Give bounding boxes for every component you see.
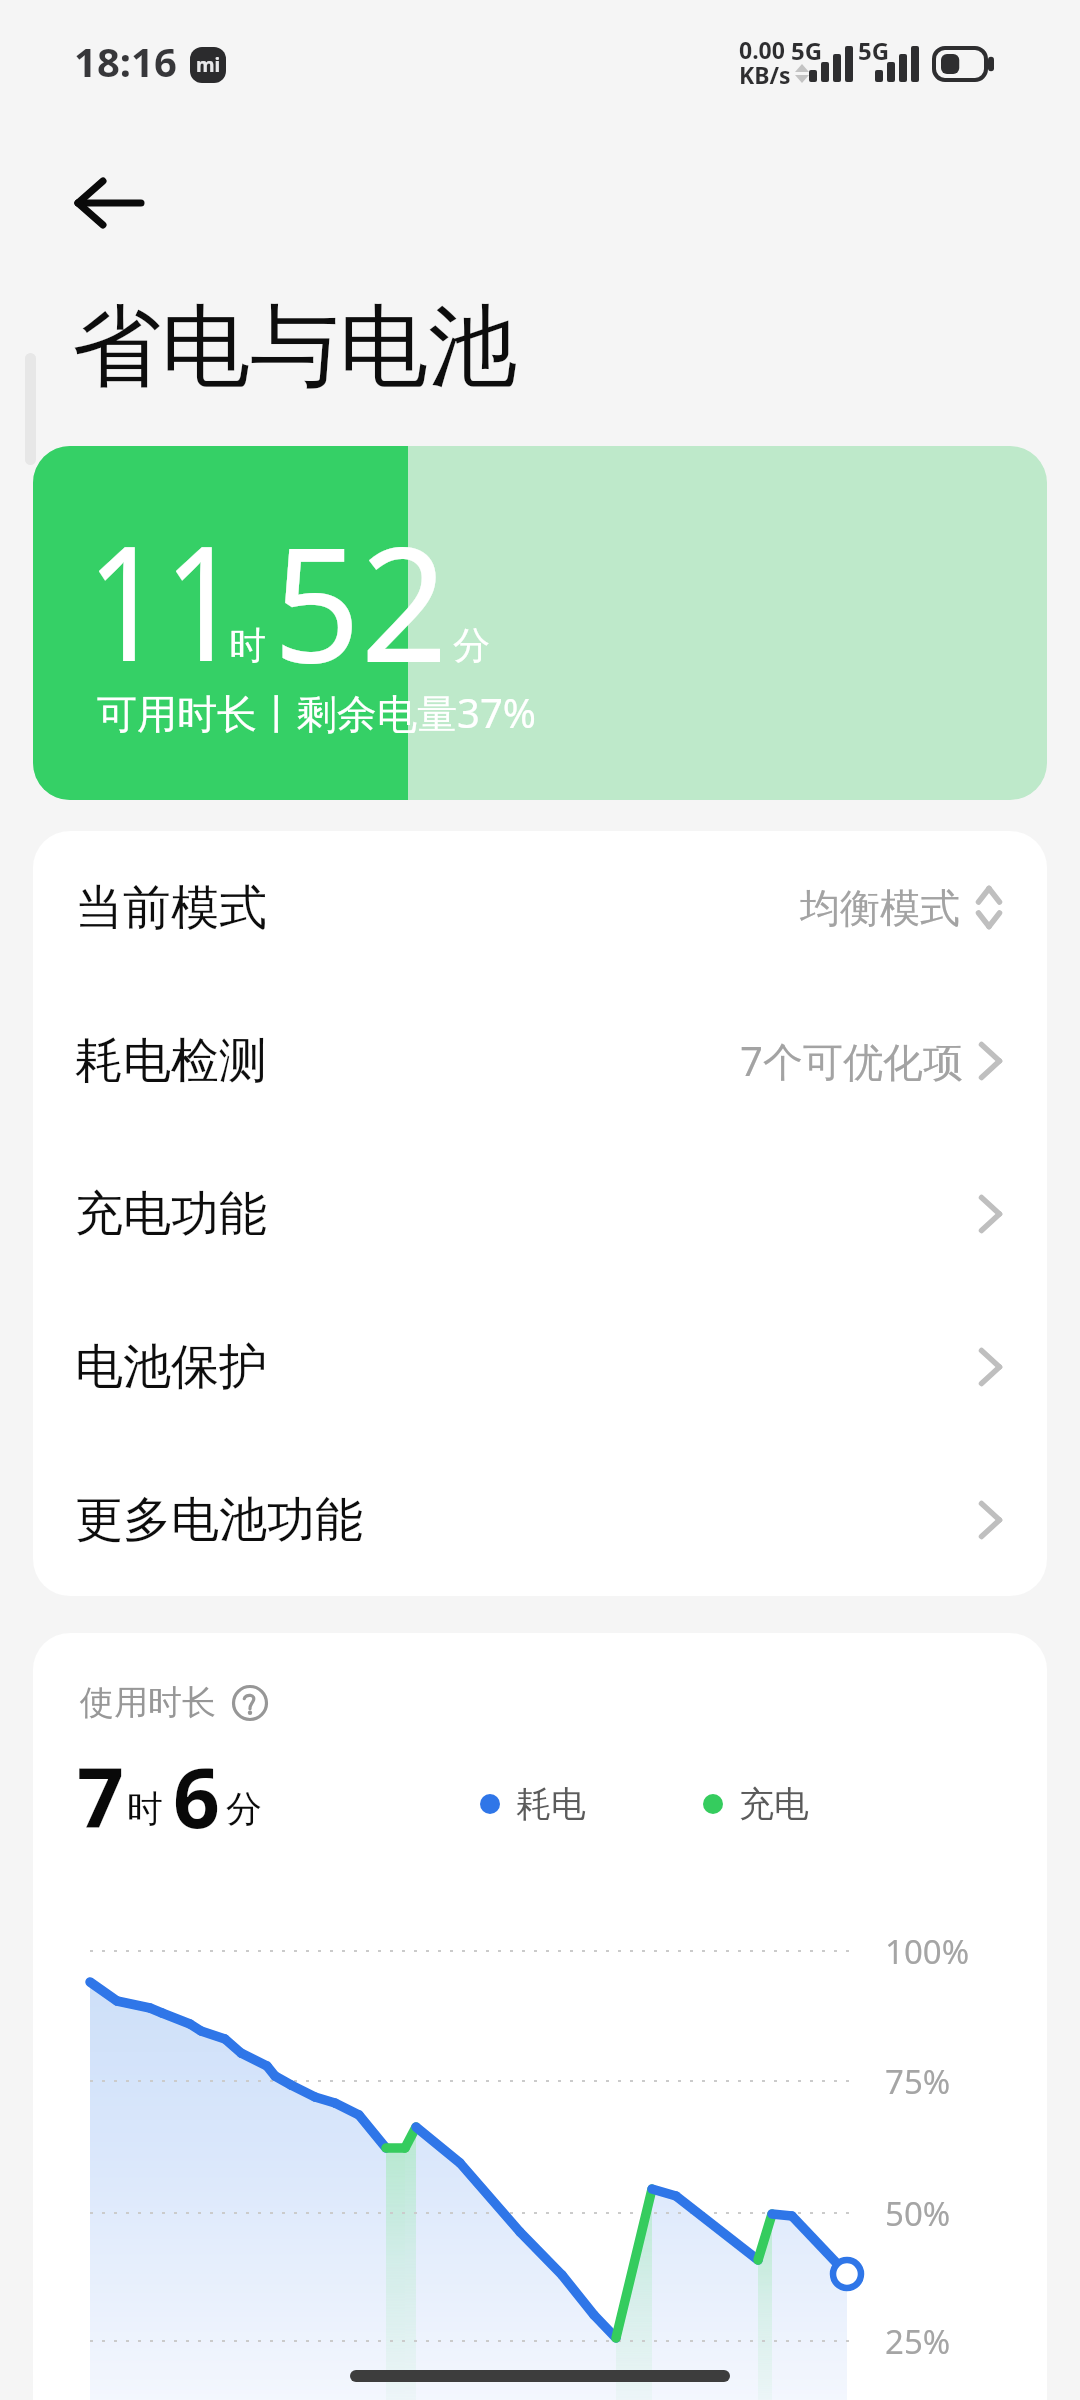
staticText: 充电 [739,1782,809,1826]
button[interactable]: 更多电池功能 [33,1443,1047,1596]
staticText: 7个可优化项 [740,1033,963,1088]
staticText: 11 [87,490,242,708]
button[interactable]: 充电功能 [33,1137,1047,1290]
staticText: 7 [77,1740,124,1852]
staticText: 电池保护 [75,1337,267,1397]
staticText: 5G [791,34,823,67]
other: Help [232,1685,268,1721]
staticText: 耗电检测 [75,1031,267,1091]
staticText: mi [196,52,221,78]
staticText: 0.00 [739,34,785,65]
staticText: 省电与电池 [72,291,517,403]
button[interactable]: 11 [33,446,1047,800]
staticText: 52 [273,491,449,709]
button[interactable]: 使用时长 [80,1681,268,1724]
staticText: 75% [885,2059,951,2104]
button[interactable]: Back [48,160,138,250]
staticText: 50% [885,2191,951,2236]
staticText: 耗电 [516,1782,586,1826]
button[interactable]: 耗电 [480,1776,586,1832]
staticText: 均衡模式 [800,883,960,933]
staticText: 时 [229,622,266,669]
button[interactable]: 充电 [703,1776,809,1832]
staticText: 6 [173,1740,220,1852]
staticText: 分 [453,622,490,669]
staticText: 当前模式 [75,878,267,938]
button[interactable]: 电池保护 [33,1290,1047,1443]
staticText: 充电功能 [75,1184,267,1244]
staticText: 更多电池功能 [75,1490,363,1550]
button[interactable]: 耗电检测 [33,984,1047,1137]
staticText: 25% [885,2319,951,2364]
staticText: 时 [127,1786,163,1831]
staticText: KB/s [739,59,791,90]
staticText: 可用时长丨剩余电量37% [97,685,536,740]
staticText: 使用时长 [80,1681,216,1724]
staticText: 分 [226,1786,262,1831]
staticText: 100% [885,1929,970,1974]
staticText: 18:16 [74,34,177,88]
button[interactable]: 当前模式 [33,831,1047,984]
other: Battery level [932,46,994,82]
staticText: 5G [858,34,890,67]
